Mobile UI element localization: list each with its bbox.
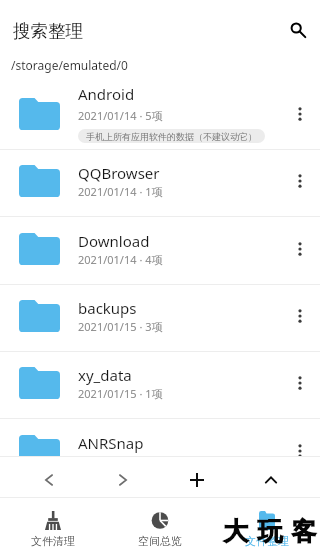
button[interactable]: backups: [0, 284, 320, 351]
staticText: xy_data: [78, 365, 132, 385]
staticText: 文件清理: [31, 534, 75, 548]
staticText: /storage/emulated/0: [11, 57, 128, 73]
staticText: QQBrowser: [78, 163, 160, 183]
button[interactable]: xy_data: [0, 351, 320, 418]
staticText: 2021/01/14 · 4项: [78, 252, 163, 267]
button[interactable]: ANRSnap: [0, 419, 320, 456]
button[interactable]: More options: [283, 366, 317, 400]
button[interactable]: More options: [283, 434, 317, 456]
button[interactable]: Android: [0, 82, 320, 149]
button[interactable]: 文件整理: [213, 498, 320, 553]
button[interactable]: 文件清理: [0, 498, 106, 553]
staticText: Android: [78, 84, 135, 104]
button[interactable]: Up: [234, 457, 308, 497]
staticText: Download: [78, 231, 150, 251]
button[interactable]: Download: [0, 217, 320, 284]
staticText: 文件整理: [245, 534, 289, 548]
button[interactable]: More options: [283, 164, 317, 198]
button[interactable]: 空间总览: [106, 498, 213, 553]
staticText: backups: [78, 298, 137, 318]
button[interactable]: Forward: [86, 457, 160, 497]
staticText: 2021/01/15 · 3项: [78, 319, 163, 334]
staticText: 空间总览: [138, 534, 182, 548]
button[interactable]: More options: [283, 232, 317, 266]
staticText: 2021/01/15 · 1项: [78, 386, 163, 401]
staticText: 2021/01/14 · 5项: [78, 108, 163, 123]
button[interactable]: More options: [283, 299, 317, 333]
button[interactable]: QQBrowser: [0, 149, 320, 216]
button[interactable]: Back: [12, 457, 86, 497]
staticText: 大玩客: [219, 516, 320, 547]
staticText: 搜索整理: [13, 20, 83, 42]
staticText: 2021/01/14 · 1项: [78, 184, 163, 199]
staticText: ANRSnap: [78, 433, 144, 453]
button[interactable]: Search: [278, 8, 318, 48]
button[interactable]: More options: [283, 97, 317, 131]
staticText: 手机上所有应用软件的数据（不建议动它）: [86, 131, 257, 142]
button[interactable]: Add: [160, 457, 234, 497]
